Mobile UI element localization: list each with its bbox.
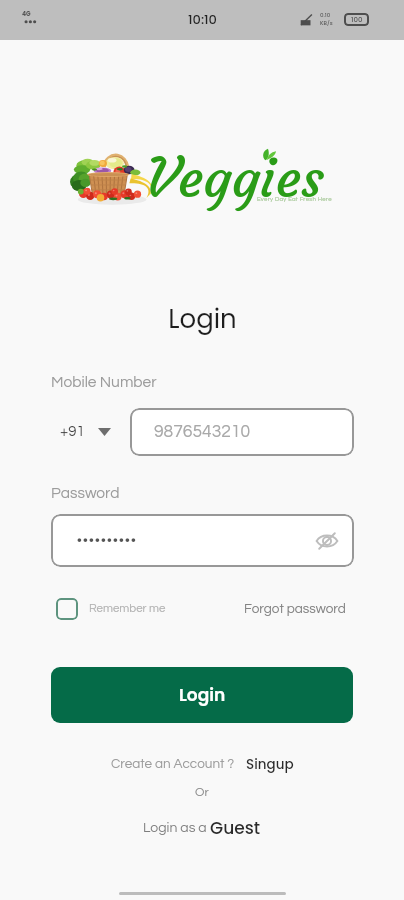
button[interactable]: ••••••••••: [51, 514, 354, 567]
button[interactable]: Forgot password: [244, 602, 346, 616]
staticText: Login as a: [143, 821, 210, 835]
staticText: Remember me: [89, 603, 166, 615]
staticText: +91: [60, 424, 85, 439]
button[interactable]: Login: [51, 667, 353, 723]
staticText: Login: [168, 301, 237, 337]
button[interactable]: Show password: [314, 528, 340, 554]
staticText: 9876543210: [154, 423, 251, 441]
staticText: Veggies: [146, 144, 324, 212]
staticText: Login: [179, 683, 226, 707]
staticText: Create an Account ?: [111, 757, 235, 771]
staticText: 4G: [22, 10, 31, 18]
button[interactable]: +91: [51, 408, 111, 455]
staticText: 0.10: [320, 11, 331, 19]
staticText: Mobile Number: [51, 374, 157, 390]
staticText: 10:10: [188, 10, 217, 28]
staticText: ••••••••••: [77, 534, 138, 548]
button[interactable]: 9876543210: [130, 408, 354, 456]
staticText: Every Day Eat Fresh Here: [257, 196, 332, 202]
staticText: KB/s: [320, 19, 333, 27]
button[interactable]: Remember me: [51, 593, 166, 625]
staticText: Password: [51, 485, 120, 501]
button[interactable]: Singup: [246, 755, 294, 774]
staticText: Or: [195, 786, 209, 799]
staticText: Guest: [210, 816, 261, 840]
button[interactable]: Login as a: [0, 814, 404, 842]
staticText: 100: [351, 15, 363, 25]
